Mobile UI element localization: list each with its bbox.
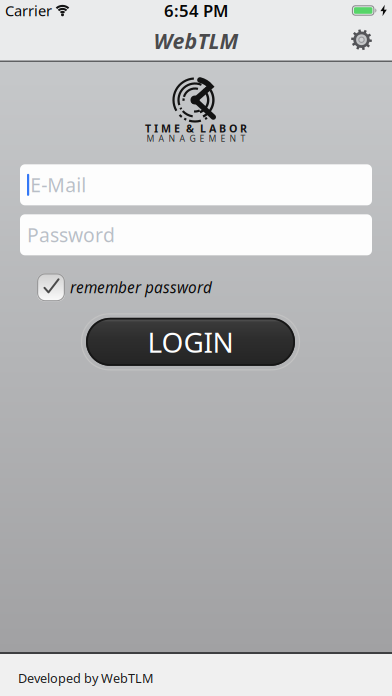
button[interactable]: remember password	[0, 273, 392, 301]
button[interactable]: Settings	[351, 29, 372, 50]
staticText: 6:54 PM	[164, 0, 228, 22]
button[interactable]: E-Mail	[0, 164, 392, 205]
staticText: E-Mail	[30, 172, 86, 198]
staticText: M A N A G E M E N T	[146, 132, 245, 144]
staticText: WebTLM	[153, 28, 238, 56]
staticText: Developed by WebTLM	[18, 669, 153, 687]
staticText: LOGIN	[147, 323, 233, 360]
staticText: remember password	[70, 277, 212, 298]
staticText: Password	[27, 222, 115, 248]
button[interactable]: LOGIN	[81, 314, 299, 370]
staticText: Carrier	[5, 0, 52, 20]
staticText: WebTLM	[153, 27, 238, 55]
button[interactable]: Password	[0, 214, 392, 255]
staticText: T I M E & L A B O R	[145, 121, 247, 135]
